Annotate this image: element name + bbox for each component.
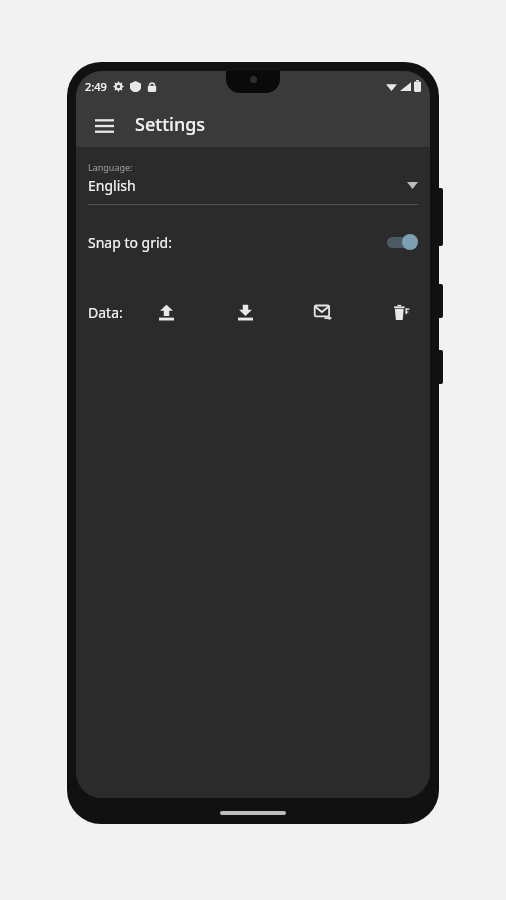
staticText: Language: [88,161,133,173]
staticText: Settings [135,112,206,137]
button[interactable]: Open navigation menu [84,104,124,144]
staticText: English [88,176,136,195]
button[interactable]: Export data [228,295,262,329]
staticText: Snap to grid: [88,233,172,252]
staticText: 2:49 [85,79,107,94]
button[interactable]: Send data by email [306,295,340,329]
button[interactable]: Import data [149,295,183,329]
staticText: Data: [88,303,123,322]
button[interactable]: Delete data [384,295,418,329]
button[interactable]: Snap to grid: [76,222,430,262]
button[interactable]: Language: [76,161,430,205]
